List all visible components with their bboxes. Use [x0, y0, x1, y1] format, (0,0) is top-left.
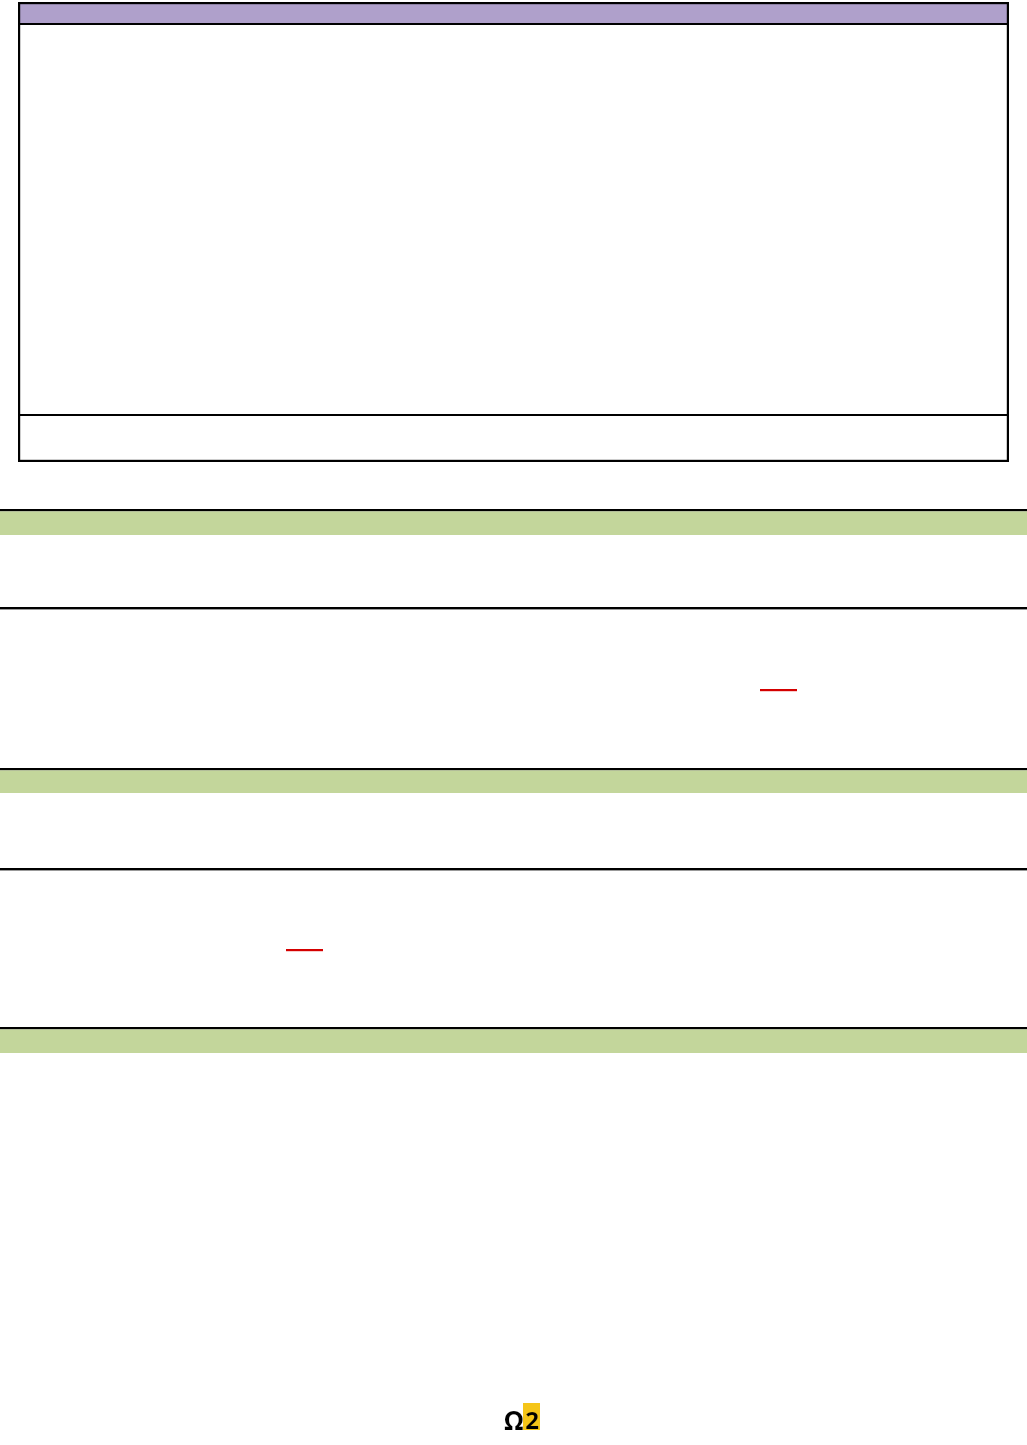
- staticText: 2: [525, 1403, 539, 1430]
- button[interactable]: [0, 509, 1027, 535]
- button[interactable]: [18, 2, 1009, 462]
- staticText: Ω: [504, 1402, 524, 1434]
- button[interactable]: [0, 1027, 1027, 1053]
- button[interactable]: [0, 768, 1027, 793]
- button[interactable]: Link: [286, 949, 323, 952]
- button[interactable]: Omega 2 logo: [504, 1400, 544, 1432]
- button[interactable]: Link: [760, 689, 797, 692]
